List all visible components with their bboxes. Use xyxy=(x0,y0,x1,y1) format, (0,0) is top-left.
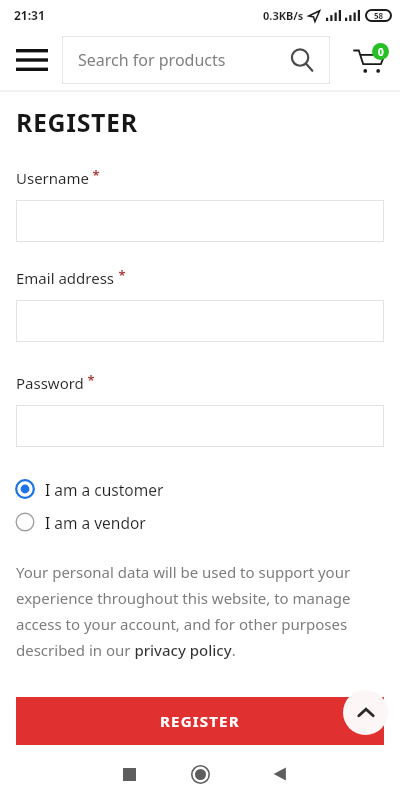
button[interactable]: Home xyxy=(180,754,220,794)
button[interactable]: Scroll to top xyxy=(343,690,388,735)
staticText: * xyxy=(115,266,126,284)
staticText: * xyxy=(89,166,100,184)
staticText: * xyxy=(84,371,95,389)
staticText: Email address xyxy=(16,268,115,288)
button[interactable]: Cart xyxy=(344,34,396,86)
button[interactable] xyxy=(16,300,384,342)
staticText: 0 xyxy=(378,45,384,59)
button[interactable]: REGISTER xyxy=(16,697,384,745)
staticText: Your personal data will be used to suppo… xyxy=(16,562,384,661)
staticText: Password xyxy=(16,373,84,393)
staticText: I am a customer xyxy=(45,479,164,500)
staticText: I am a vendor xyxy=(45,512,146,533)
button[interactable]: Menu xyxy=(8,36,56,84)
staticText: REGISTER xyxy=(16,105,138,139)
staticText: Username xyxy=(16,168,89,188)
staticText: 58 xyxy=(374,10,384,21)
button[interactable]: Search for products xyxy=(62,36,330,84)
button[interactable]: I am a vendor xyxy=(14,509,146,535)
staticText: 21:31 xyxy=(14,7,45,23)
button[interactable]: Recents xyxy=(109,754,149,794)
staticText: REGISTER xyxy=(160,711,240,731)
staticText: Search for products xyxy=(78,49,226,71)
button[interactable]: Back xyxy=(260,754,300,794)
staticText: 0.3KB/s xyxy=(263,8,304,23)
button[interactable] xyxy=(16,200,384,242)
button[interactable]: I am a customer xyxy=(14,476,164,502)
button[interactable] xyxy=(16,405,384,447)
